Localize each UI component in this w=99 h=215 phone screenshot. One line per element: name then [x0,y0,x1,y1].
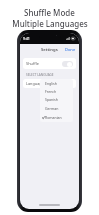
button[interactable]: German [40,104,73,113]
staticText: Romanian [45,115,62,120]
button[interactable]: Spanish [40,95,73,104]
staticText: English [45,81,57,86]
button[interactable]: Shuffle [23,58,76,69]
button[interactable]: Romanian [40,113,73,122]
button[interactable]: Done [62,45,79,54]
staticText: Multiple Languages [12,18,88,29]
button[interactable]: English [40,79,73,87]
staticText: French [45,89,57,94]
staticText: Shuffle [26,61,39,66]
button[interactable]: Language [23,79,76,88]
staticText: 9:41 [23,36,30,41]
staticText: Spanish [45,97,58,102]
staticText: Romanian [51,81,69,86]
button[interactable]: Shuffle toggle [62,61,73,67]
staticText: Language [26,81,44,86]
staticText: Shuffle Mode [24,7,75,18]
staticText: Done [65,47,76,52]
staticText: Settings [41,47,58,53]
staticText: SELECT LANGUAGE [26,73,54,77]
staticText: German [45,106,59,111]
button[interactable]: French [40,87,73,95]
